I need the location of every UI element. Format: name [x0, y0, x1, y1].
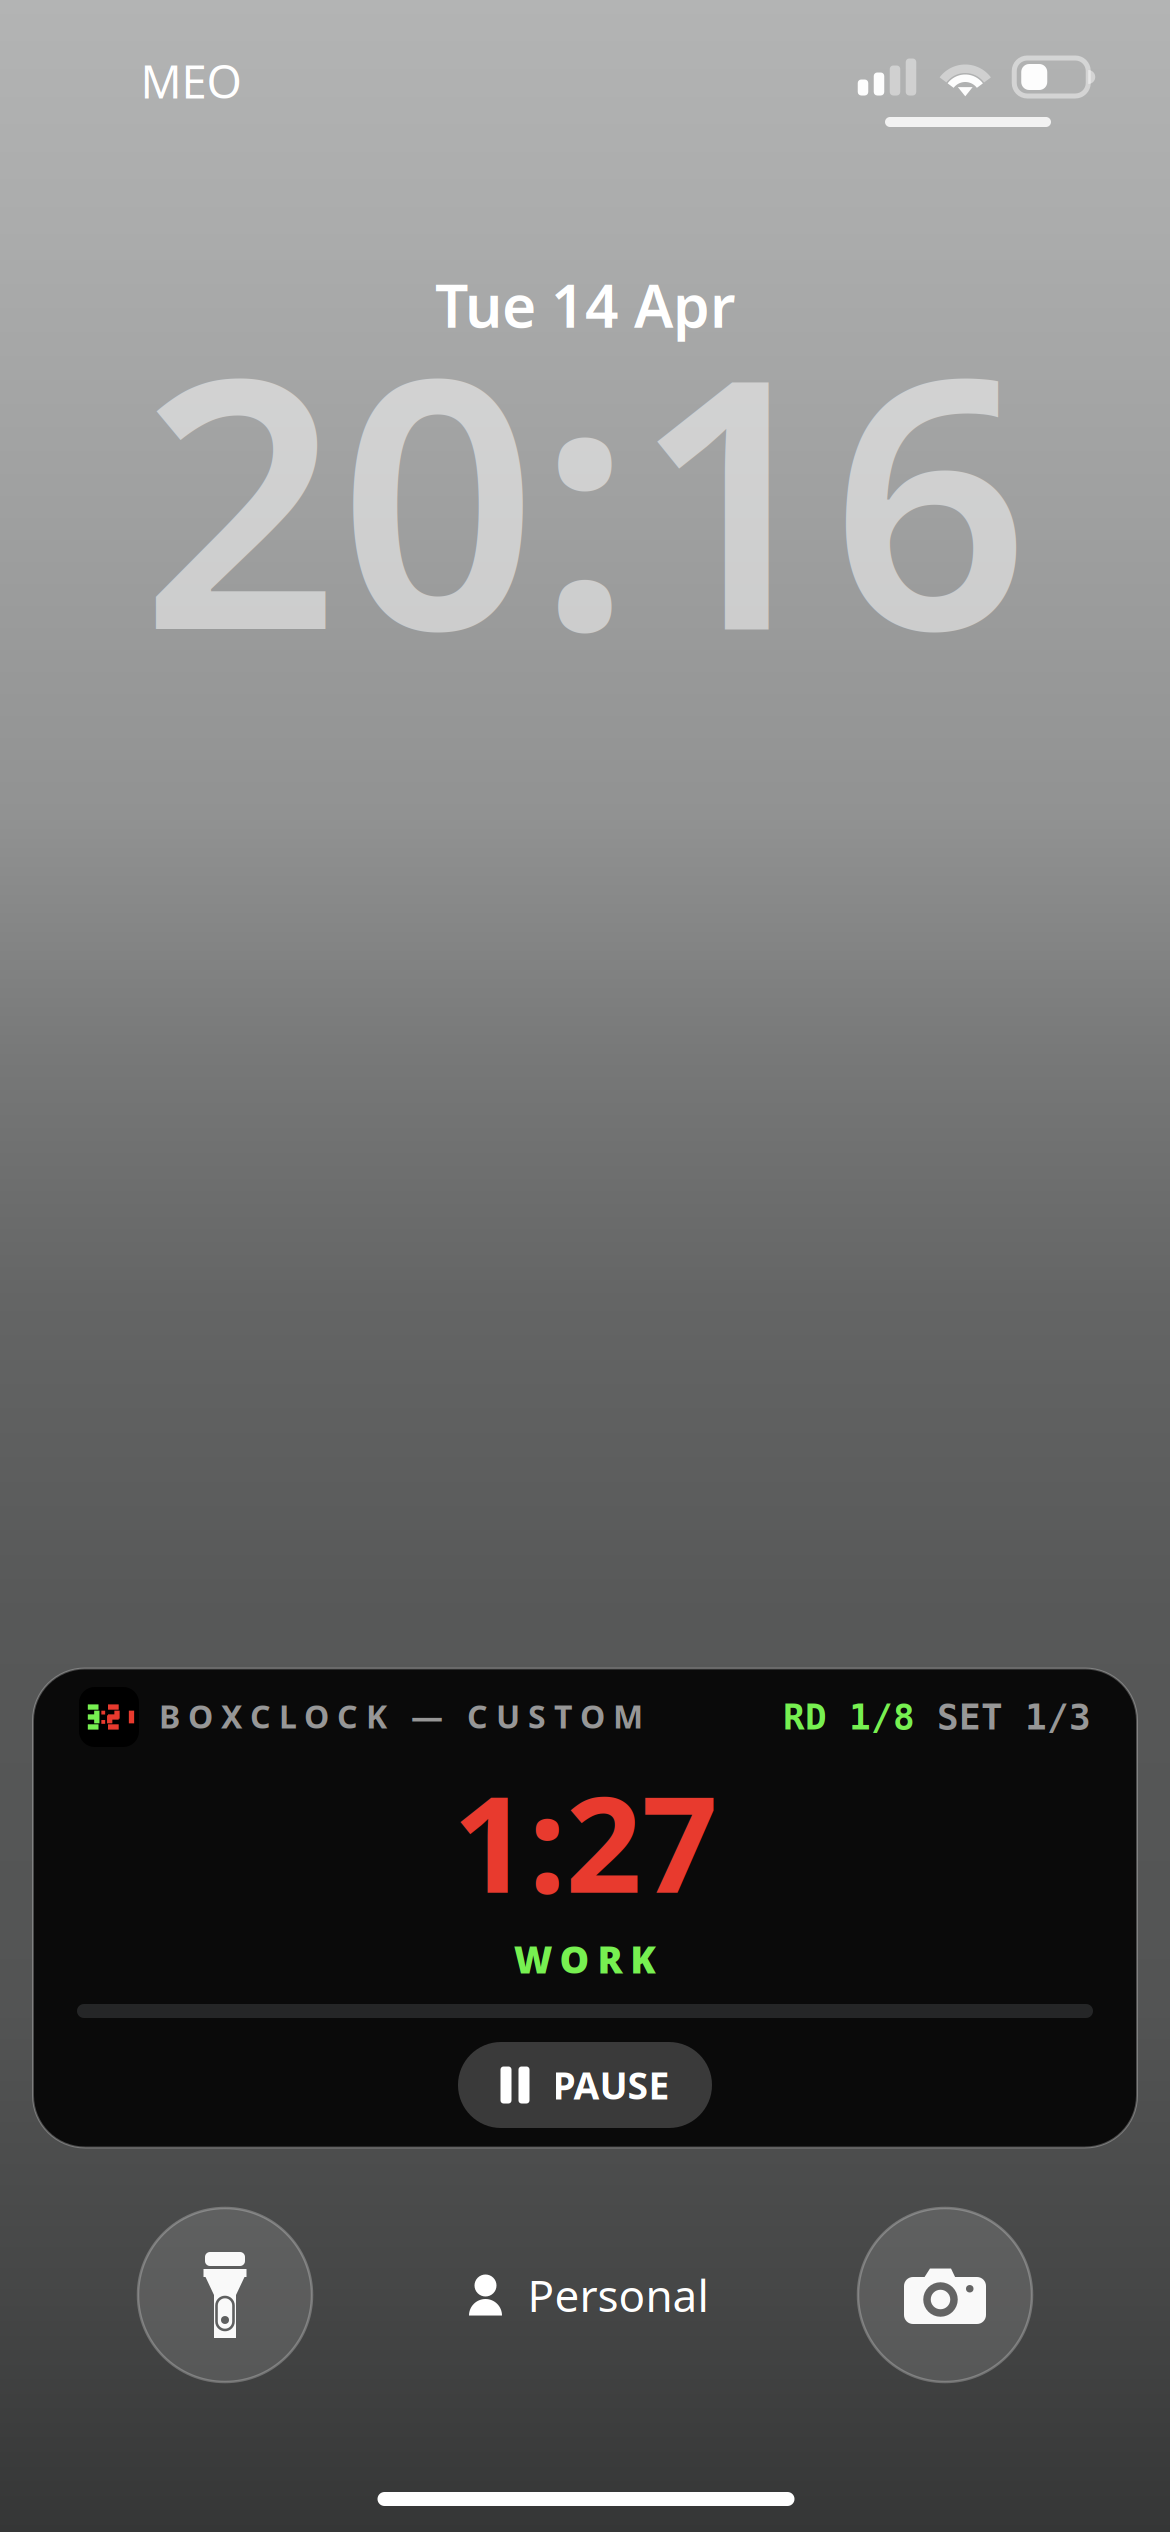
staticText: 20:16 [141, 265, 1029, 725]
staticText: 1:27 [452, 1752, 717, 1930]
staticText: Tue 14 Apr [435, 266, 735, 344]
staticText: WORK [514, 1934, 656, 1984]
staticText: BOXCLOCK — CUSTOM [159, 1695, 643, 1737]
staticText: MEO [140, 51, 241, 111]
staticText: Personal [527, 2266, 708, 2324]
button[interactable]: Flashlight [138, 2208, 312, 2382]
staticText: RD 1/8 [783, 1697, 915, 1737]
button[interactable]: BoxClock — Custom, round 1 of 8, set 1 o… [33, 1668, 1137, 2147]
button[interactable]: PAUSE [458, 2042, 712, 2128]
button[interactable]: Camera [858, 2208, 1032, 2382]
staticText: SET 1/3 [915, 1697, 1091, 1737]
staticText: PAUSE [552, 2060, 669, 2110]
